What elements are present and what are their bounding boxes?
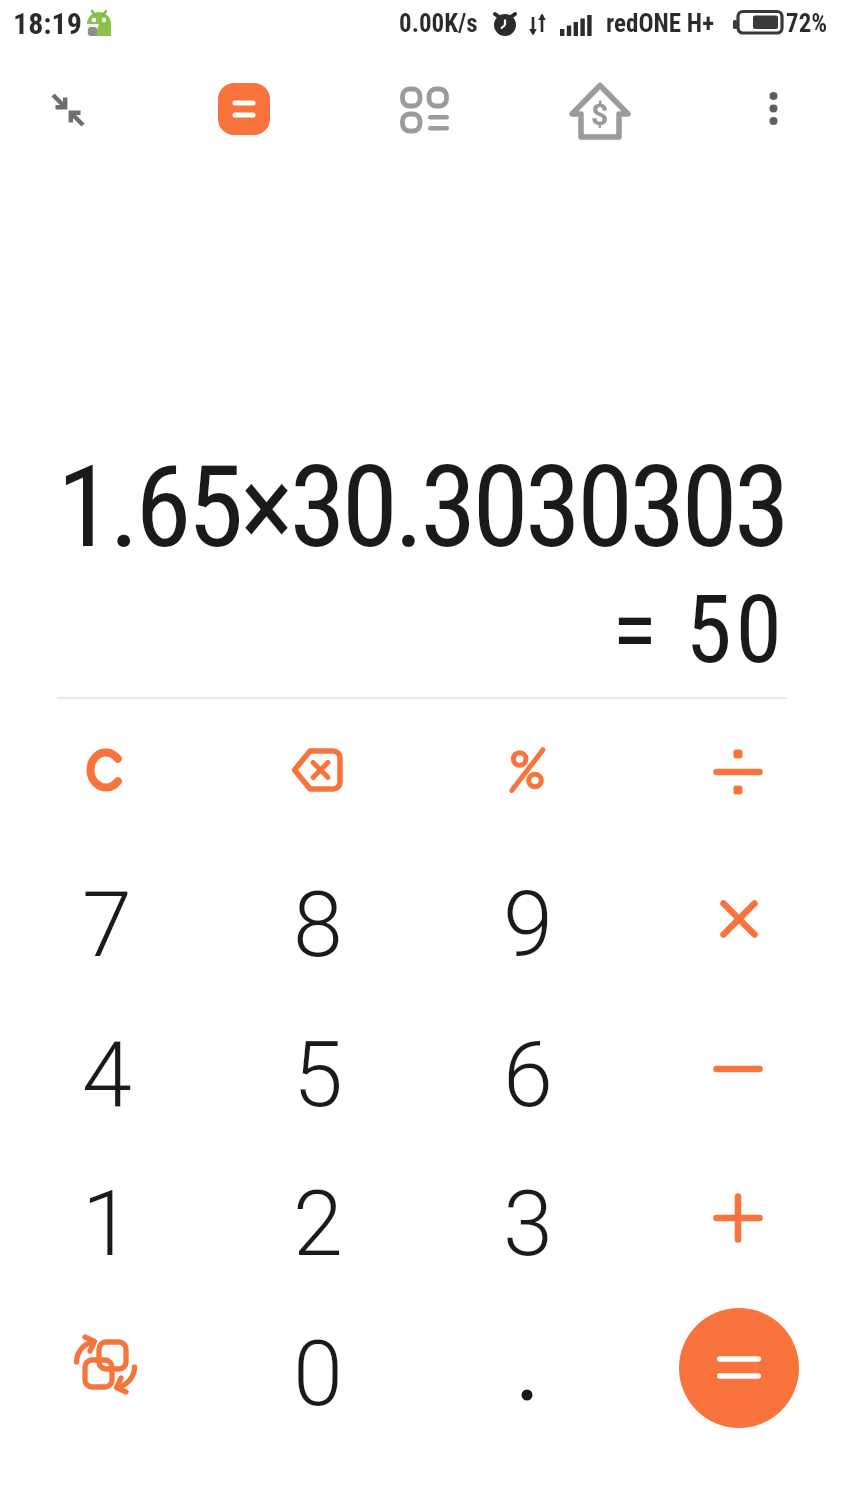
button[interactable] — [653, 849, 823, 989]
staticText: 1.65×30.3030303 — [57, 440, 787, 574]
button[interactable] — [653, 1148, 823, 1288]
staticText: 9 — [503, 873, 553, 978]
button[interactable] — [218, 83, 270, 135]
staticText: redONE H+ — [606, 9, 715, 38]
button[interactable]: 6 — [443, 1005, 613, 1145]
staticText: 0.00K/s — [399, 9, 478, 38]
button[interactable]: 8 — [233, 855, 403, 995]
button[interactable] — [21, 1298, 191, 1438]
staticText: 8 — [293, 873, 343, 978]
button[interactable] — [44, 86, 92, 134]
button[interactable] — [653, 700, 823, 840]
staticText: 72% — [786, 9, 828, 38]
button[interactable]: 1 — [22, 1154, 192, 1294]
button[interactable] — [749, 84, 797, 132]
staticText: 18:19 — [13, 6, 82, 41]
staticText: 2 — [293, 1172, 343, 1277]
staticText: $ — [591, 97, 609, 132]
staticText: 4 — [82, 1023, 132, 1128]
staticText: = 50 — [612, 575, 786, 685]
staticText: 0 — [293, 1322, 343, 1427]
button[interactable] — [679, 1308, 799, 1428]
button[interactable] — [442, 1298, 612, 1438]
staticText: 6 — [503, 1023, 553, 1128]
staticText: 5 — [293, 1023, 343, 1128]
button[interactable]: 7 — [22, 855, 192, 995]
button[interactable] — [653, 999, 823, 1139]
button[interactable]: 0 — [233, 1304, 403, 1444]
button[interactable] — [232, 700, 402, 840]
staticText: 3 — [503, 1172, 553, 1277]
button[interactable]: $ — [570, 82, 630, 142]
button[interactable] — [21, 700, 191, 840]
staticText: 7 — [82, 873, 132, 978]
button[interactable] — [396, 82, 452, 138]
button[interactable]: 2 — [233, 1154, 403, 1294]
button[interactable] — [442, 700, 612, 840]
button[interactable]: 5 — [233, 1005, 403, 1145]
button[interactable]: 4 — [22, 1005, 192, 1145]
button[interactable]: 9 — [443, 855, 613, 995]
staticText: 1 — [82, 1172, 132, 1277]
button[interactable]: 3 — [443, 1154, 613, 1294]
